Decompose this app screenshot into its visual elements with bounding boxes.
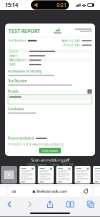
staticText: Batch [9, 63, 16, 66]
staticText: Results [8, 90, 18, 93]
button[interactable]: Back [2, 199, 17, 210]
staticText: aA [11, 189, 16, 194]
staticText: Client [9, 50, 18, 53]
staticText: Verification of identity [8, 70, 41, 73]
staticText: PDF-Dokument · 1 Seite · 231 KB [26, 163, 73, 167]
staticText: thinksteroids.com [36, 189, 67, 194]
staticText: TEST REPORT [8, 27, 40, 34]
button[interactable]: Bookmarks [63, 199, 78, 210]
staticText: Sample [9, 54, 18, 57]
staticText: Scan-anmeldung.pdf [31, 157, 69, 163]
button[interactable]: Page settings [8, 186, 19, 196]
staticText: 0:21 [56, 1, 66, 9]
button[interactable]: Document [19, 166, 35, 183]
button[interactable]: Forward [22, 199, 37, 210]
button[interactable]: Document [75, 166, 91, 183]
staticText: Report concluded [8, 137, 34, 140]
button[interactable]: Document [56, 166, 72, 183]
button[interactable]: DOWNLOAD [39, 148, 61, 153]
button[interactable]: Document [93, 166, 100, 183]
button[interactable]: Document [38, 166, 54, 183]
staticText: Report date [63, 43, 80, 47]
staticText: DOWNLOAD [42, 149, 58, 152]
button[interactable]: Share [42, 199, 57, 210]
staticText: Sampling date [61, 39, 80, 42]
staticText: Verify the test at www.prolabs.com/verif… [8, 143, 63, 146]
staticText: Test Number [8, 39, 26, 42]
button[interactable]: Reload [80, 186, 91, 196]
staticText: Conclusion [8, 107, 24, 111]
staticText: 15:14 [5, 1, 18, 9]
button[interactable]: Tabs [83, 199, 98, 210]
button[interactable]: Photo [1, 166, 17, 183]
staticText: Manufacturer [9, 58, 26, 62]
staticText: Test Objective [8, 79, 27, 83]
